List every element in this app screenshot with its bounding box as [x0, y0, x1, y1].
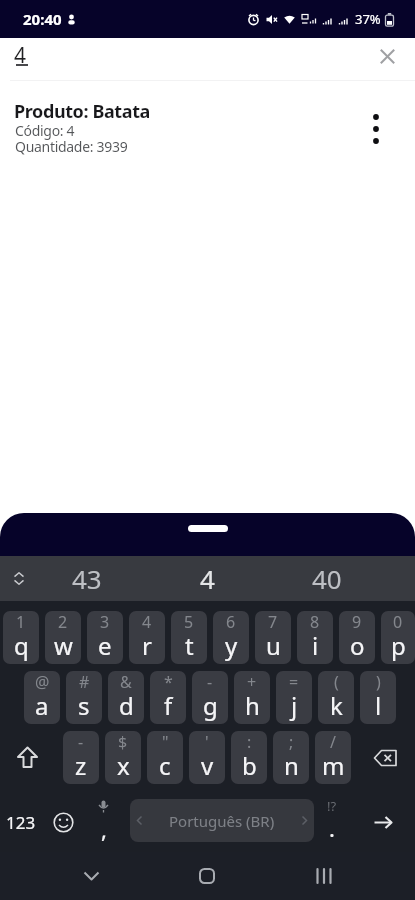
staticText: 6: [226, 611, 236, 633]
staticText: Produto: Batata: [14, 99, 150, 124]
staticText: 20:40: [23, 9, 62, 29]
staticText: j: [291, 689, 298, 722]
button[interactable]: 5: [171, 611, 207, 664]
button[interactable]: 0: [381, 611, 415, 664]
staticText: s: [78, 689, 90, 722]
staticText: a: [35, 689, 49, 722]
button[interactable]: :: [231, 731, 267, 784]
staticText: 9: [352, 611, 362, 633]
staticText: ": [162, 731, 169, 753]
staticText: d: [119, 689, 134, 722]
staticText: #: [79, 671, 90, 693]
button[interactable]: [75, 860, 107, 892]
button[interactable]: 1: [3, 611, 39, 664]
staticText: u: [266, 629, 281, 662]
staticText: t: [185, 629, 194, 662]
staticText: v: [201, 749, 214, 782]
staticText: f: [164, 689, 173, 722]
staticText: r: [142, 629, 152, 662]
button[interactable]: &: [108, 671, 144, 724]
staticText: :: [247, 731, 252, 753]
staticText: *: [164, 671, 173, 693]
button[interactable]: -: [192, 671, 228, 724]
button[interactable]: +: [234, 671, 270, 724]
button[interactable]: 40: [282, 556, 372, 601]
button[interactable]: 43: [42, 556, 132, 601]
staticText: 1: [16, 611, 26, 633]
staticText: 43: [72, 561, 102, 596]
button[interactable]: [48, 799, 78, 845]
button[interactable]: 123: [0, 799, 42, 845]
button[interactable]: [5, 565, 32, 592]
button[interactable]: 2: [45, 611, 81, 664]
staticText: 4: [14, 41, 27, 70]
button[interactable]: 4: [129, 611, 165, 664]
staticText: -: [207, 671, 213, 693]
staticText: p: [391, 629, 406, 662]
staticText: ': [205, 731, 209, 753]
staticText: 8: [310, 611, 320, 633]
button[interactable]: ': [189, 731, 225, 784]
button[interactable]: [373, 42, 401, 70]
button[interactable]: /: [315, 731, 351, 784]
staticText: g: [203, 689, 218, 722]
button[interactable]: 4: [162, 556, 252, 601]
button[interactable]: [191, 860, 223, 892]
button[interactable]: ": [147, 731, 183, 784]
staticText: 37%: [355, 10, 381, 28]
staticText: l: [375, 689, 382, 722]
staticText: @: [35, 671, 50, 693]
staticText: !?: [327, 797, 337, 815]
staticText: ): [376, 671, 381, 693]
staticText: b: [242, 749, 257, 782]
button[interactable]: 8: [297, 611, 333, 664]
button[interactable]: [362, 102, 390, 156]
staticText: ;: [289, 731, 294, 753]
button[interactable]: 3: [87, 611, 123, 664]
staticText: 0: [393, 611, 403, 633]
staticText: -: [78, 731, 84, 753]
staticText: 2: [58, 611, 68, 633]
button[interactable]: #: [66, 671, 102, 724]
button[interactable]: !?: [315, 791, 349, 845]
button[interactable]: [308, 860, 340, 892]
staticText: 5: [184, 611, 194, 633]
staticText: w: [54, 629, 73, 662]
staticText: =: [289, 671, 299, 693]
staticText: x: [117, 749, 130, 782]
staticText: o: [350, 629, 365, 662]
staticText: n: [284, 749, 299, 782]
button[interactable]: ;: [273, 731, 309, 784]
staticText: 4: [142, 611, 152, 633]
staticText: h: [245, 689, 260, 722]
button[interactable]: [5, 731, 50, 784]
button[interactable]: *: [150, 671, 186, 724]
button[interactable]: ,: [85, 791, 122, 845]
staticText: Código: 4: [15, 121, 75, 140]
button[interactable]: 6: [213, 611, 249, 664]
button[interactable]: [357, 799, 409, 845]
button[interactable]: ): [360, 671, 396, 724]
button[interactable]: Produto: Batata: [0, 96, 415, 158]
staticText: $: [118, 731, 128, 753]
staticText: 123: [6, 811, 36, 834]
button[interactable]: 9: [339, 611, 375, 664]
button[interactable]: 7: [255, 611, 291, 664]
staticText: &: [120, 671, 132, 693]
staticText: Português (BR): [169, 811, 275, 831]
staticText: .: [329, 813, 335, 843]
button[interactable]: (: [318, 671, 354, 724]
staticText: ,: [101, 814, 107, 844]
staticText: z: [75, 749, 87, 782]
staticText: /: [330, 731, 336, 753]
staticText: k: [330, 689, 343, 722]
button[interactable]: $: [105, 731, 141, 784]
staticText: Quantidade: 3939: [15, 137, 128, 156]
staticText: (: [334, 671, 339, 693]
button[interactable]: [361, 731, 409, 784]
button[interactable]: Português (BR): [130, 799, 314, 842]
button[interactable]: @: [24, 671, 60, 724]
button[interactable]: =: [276, 671, 312, 724]
button[interactable]: -: [63, 731, 99, 784]
staticText: e: [98, 629, 112, 662]
